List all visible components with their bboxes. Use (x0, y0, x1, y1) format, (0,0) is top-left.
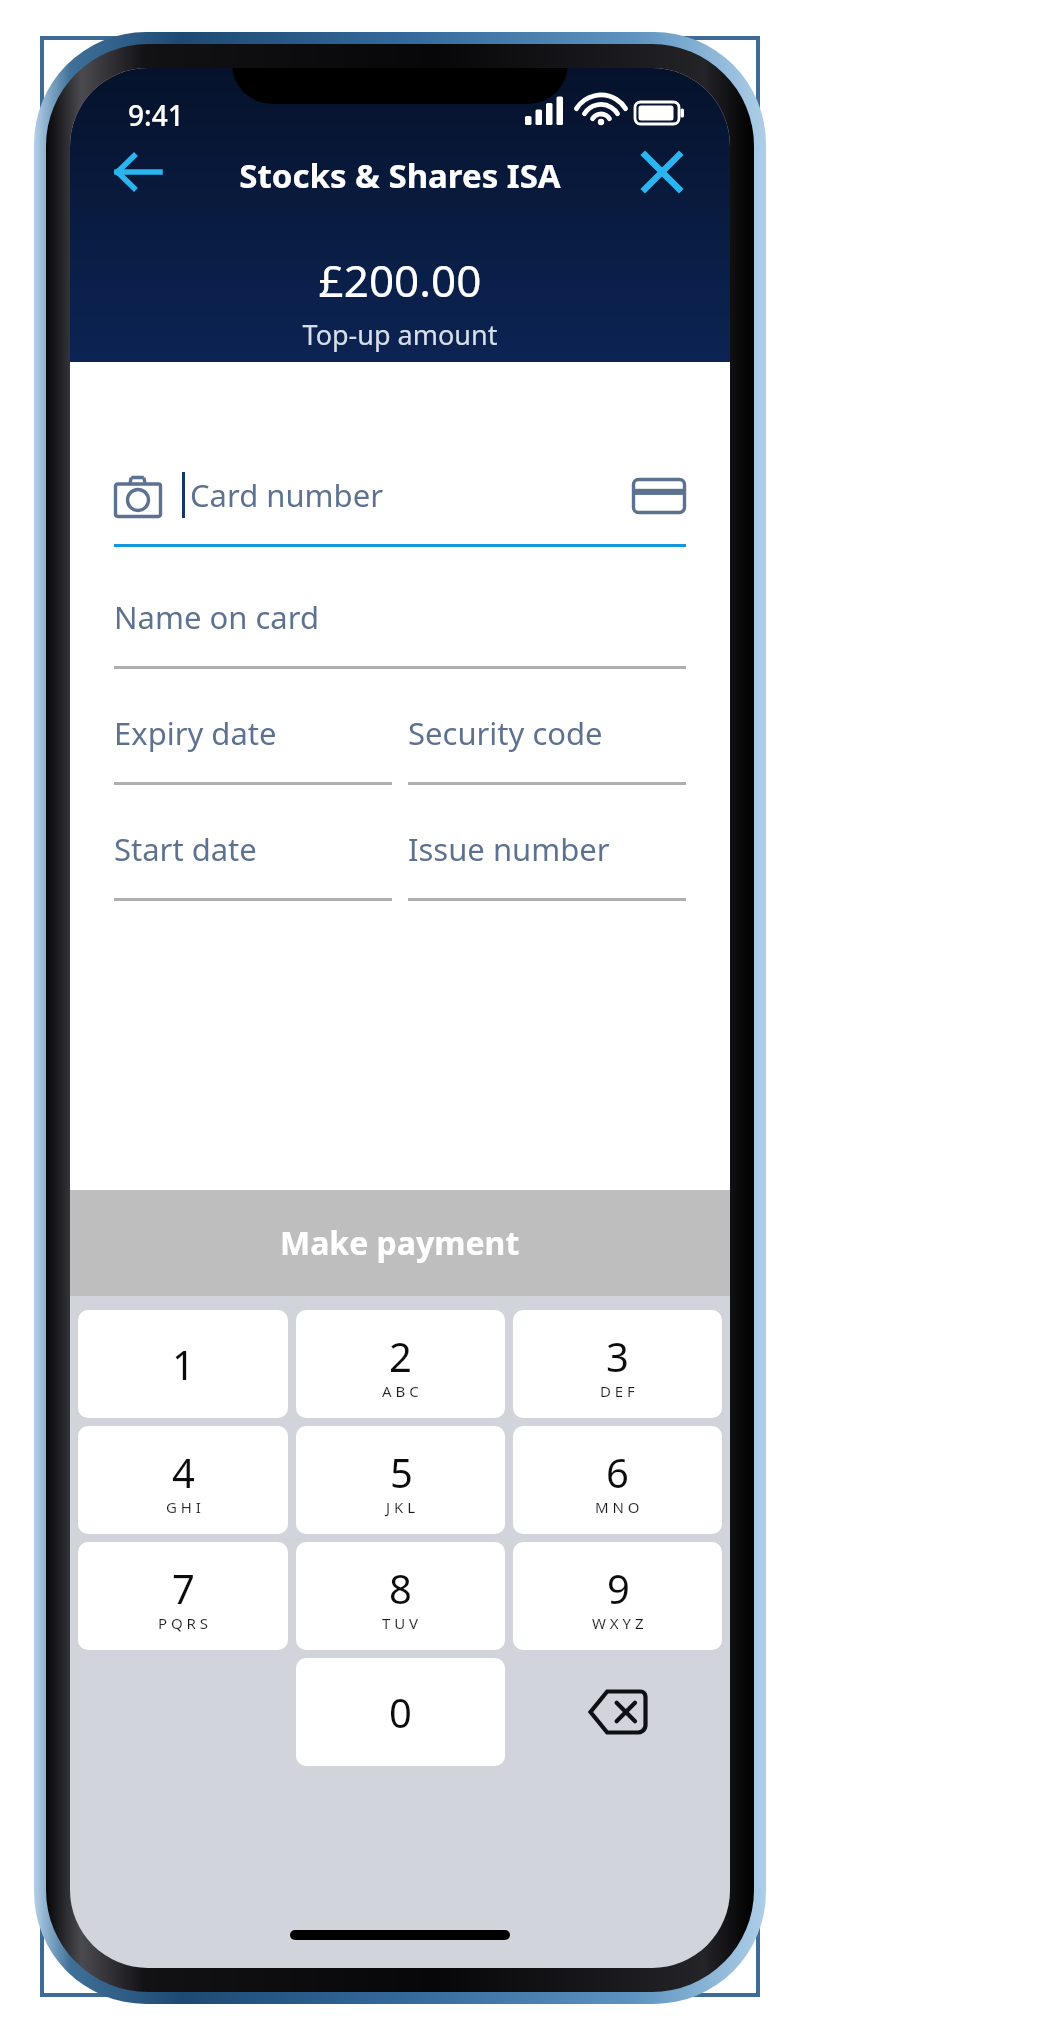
staticText: Issue number (408, 828, 610, 870)
button[interactable]: 5 (296, 1426, 505, 1534)
button[interactable]: 9 (513, 1542, 722, 1650)
staticText: W X Y Z (592, 1613, 644, 1633)
staticText: 3 (606, 1329, 629, 1383)
button[interactable]: Make payment (70, 1190, 730, 1296)
staticText: J K L (386, 1497, 416, 1517)
staticText: Stocks & Shares ISA (70, 153, 730, 198)
staticText: G H I (166, 1497, 201, 1517)
staticText: P Q R S (158, 1613, 209, 1633)
button[interactable]: Close (622, 136, 702, 208)
staticText: Name on card (114, 596, 319, 638)
staticText: Card number (190, 474, 383, 516)
staticText: 8 (389, 1561, 412, 1615)
staticText: Expiry date (114, 712, 277, 754)
button[interactable]: 7 (78, 1542, 288, 1650)
button[interactable]: Issue number (408, 816, 686, 912)
staticText: 7 (172, 1561, 195, 1615)
button[interactable]: Card number (114, 462, 686, 558)
button[interactable]: 4 (78, 1426, 288, 1534)
staticText: Top-up amount (70, 316, 730, 353)
staticText: Security code (408, 712, 603, 754)
button[interactable]: 8 (296, 1542, 505, 1650)
staticText: 4 (172, 1445, 195, 1499)
staticText: 2 (389, 1329, 412, 1383)
staticText: Make payment (280, 1221, 520, 1265)
button[interactable]: 3 (513, 1310, 722, 1418)
staticText: A B C (382, 1381, 419, 1401)
staticText: Start date (114, 828, 257, 870)
staticText: 6 (606, 1445, 629, 1499)
staticText: D E F (600, 1381, 635, 1401)
button[interactable]: 6 (513, 1426, 722, 1534)
button[interactable]: Backspace (513, 1658, 722, 1766)
button[interactable]: 1 (78, 1310, 288, 1418)
staticText: M N O (595, 1497, 640, 1517)
staticText: 9:41 (128, 96, 184, 134)
button[interactable]: Expiry date (114, 700, 392, 796)
button[interactable]: 0 (296, 1658, 505, 1766)
button[interactable]: Back (96, 136, 180, 208)
button[interactable]: 2 (296, 1310, 505, 1418)
button[interactable]: Name on card (114, 584, 686, 680)
staticText: 5 (390, 1445, 413, 1499)
staticText: 0 (389, 1685, 412, 1739)
staticText: T U V (382, 1613, 419, 1633)
button[interactable]: Start date (114, 816, 392, 912)
staticText: 1 (172, 1337, 195, 1391)
staticText: £200.00 (70, 250, 730, 310)
staticText: 9 (607, 1561, 630, 1615)
button[interactable]: Security code (408, 700, 686, 796)
